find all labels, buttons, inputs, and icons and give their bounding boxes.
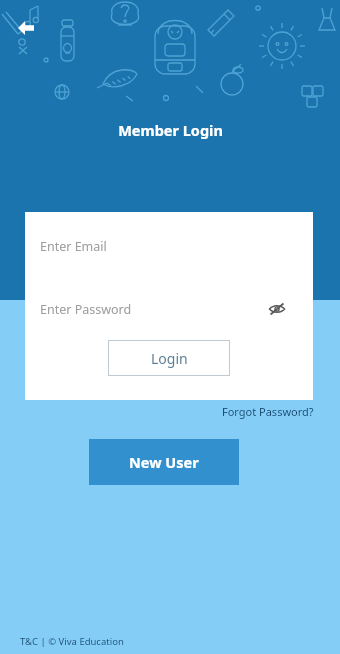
staticText: Enter Password — [40, 301, 132, 318]
staticText: Login — [151, 349, 188, 368]
button[interactable]: Login — [108, 340, 230, 376]
button[interactable]: T&C | © Viva Education — [18, 633, 126, 650]
staticText: Member Login — [118, 120, 223, 140]
button[interactable]: Forgot Password? — [220, 402, 316, 421]
staticText: T&C | © Viva Education — [20, 635, 124, 648]
button[interactable]: Back — [8, 10, 44, 46]
button[interactable]: Enter Password — [25, 274, 313, 340]
button[interactable]: New User — [89, 439, 239, 485]
button[interactable]: Enter Email — [25, 212, 313, 274]
staticText: Forgot Password? — [222, 404, 314, 419]
staticText: Enter Email — [40, 238, 107, 255]
button[interactable]: Show password — [263, 295, 291, 323]
staticText: New User — [129, 452, 199, 472]
